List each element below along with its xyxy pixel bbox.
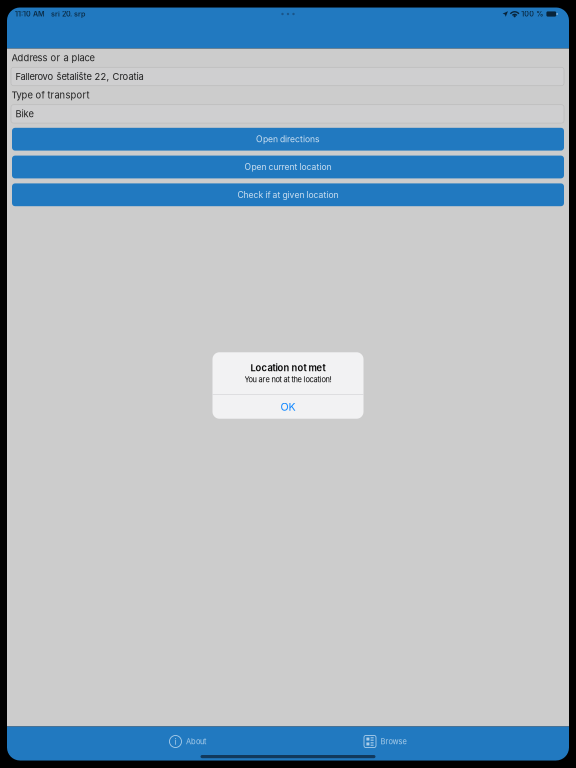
- staticText: You are not at the location!: [244, 375, 331, 384]
- staticText: Address or a place: [11, 52, 94, 63]
- button[interactable]: Check if at given location: [12, 183, 564, 206]
- button[interactable]: Browse: [364, 728, 406, 754]
- button[interactable]: Open directions: [12, 128, 564, 151]
- staticText: i: [174, 736, 176, 747]
- staticText: Check if at given location: [237, 190, 338, 200]
- staticText: Location not met: [250, 362, 325, 373]
- staticText: Open current location: [244, 162, 331, 172]
- staticText: About: [186, 737, 206, 746]
- staticText: Fallerovo šetalište 22, Croatia: [15, 71, 143, 82]
- staticText: Open directions: [256, 134, 320, 144]
- staticText: Bike: [15, 108, 33, 120]
- button[interactable]: OK: [212, 395, 363, 419]
- staticText: Browse: [380, 737, 406, 746]
- button[interactable]: Open current location: [12, 156, 564, 178]
- staticText: Type of transport: [11, 90, 89, 101]
- staticText: 11:10 AM sri 20. srp: [15, 10, 85, 18]
- staticText: 100 %: [521, 10, 543, 18]
- staticText: OK: [280, 400, 295, 413]
- button[interactable]: i: [169, 728, 206, 754]
